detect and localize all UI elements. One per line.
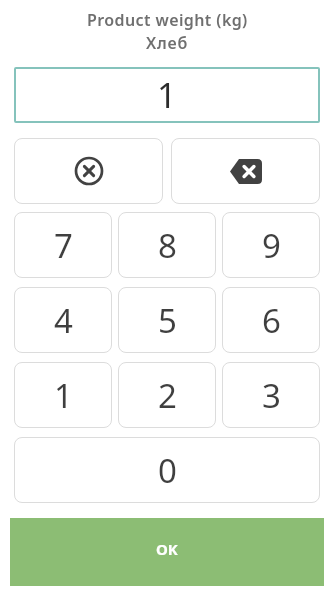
staticText: 3 [262,373,281,418]
button[interactable] [171,138,320,204]
staticText: Product weight (kg) [87,9,248,31]
staticText: 8 [158,223,177,268]
staticText: 0 [158,448,177,493]
staticText: 1 [157,72,177,118]
staticText: 9 [262,223,281,268]
button[interactable]: 4 [14,287,112,353]
button[interactable] [14,138,163,204]
button[interactable]: OK [10,518,324,586]
staticText: 7 [54,223,73,268]
staticText: 4 [54,298,73,343]
button[interactable]: 2 [118,362,216,428]
staticText: OK [156,539,178,559]
staticText: 2 [158,373,177,418]
button[interactable]: 1 [14,362,112,428]
staticText: Хлеб [146,32,189,54]
staticText: 5 [158,298,177,343]
button[interactable]: 8 [118,212,216,278]
button[interactable]: 6 [222,287,320,353]
staticText: 1 [54,373,73,418]
button[interactable]: 0 [14,437,320,503]
button[interactable]: 9 [222,212,320,278]
button[interactable]: 3 [222,362,320,428]
button[interactable]: 7 [14,212,112,278]
button[interactable]: 5 [118,287,216,353]
staticText: 6 [262,298,281,343]
